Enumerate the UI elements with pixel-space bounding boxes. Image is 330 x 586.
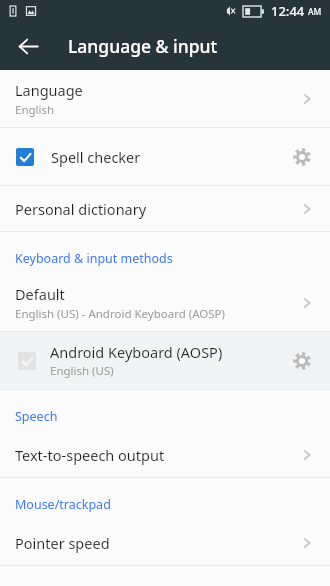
staticText: 12:44 bbox=[271, 2, 305, 20]
button[interactable]: Android Keyboard (AOSP) bbox=[0, 332, 330, 389]
staticText: Speech bbox=[15, 408, 58, 425]
staticText: English bbox=[15, 102, 55, 118]
staticText: Language & input bbox=[68, 34, 218, 58]
staticText: Mouse/trackpad bbox=[15, 496, 111, 513]
staticText: Pointer speed bbox=[15, 533, 110, 553]
staticText: Language bbox=[15, 80, 83, 100]
staticText: AM bbox=[308, 6, 322, 18]
staticText: English (US) bbox=[50, 363, 114, 379]
button[interactable]: Navigate up bbox=[6, 24, 50, 68]
button[interactable]: Default bbox=[0, 274, 330, 331]
staticText: Text-to-speech output bbox=[15, 445, 165, 465]
button[interactable]: Language bbox=[0, 70, 330, 127]
button[interactable]: Settings bbox=[285, 344, 319, 378]
button[interactable]: Settings bbox=[285, 140, 319, 174]
staticText: Keyboard & input methods bbox=[15, 250, 173, 267]
staticText: Personal dictionary bbox=[15, 199, 147, 219]
button[interactable]: Personal dictionary bbox=[0, 186, 330, 231]
button[interactable]: Text-to-speech output bbox=[0, 432, 330, 477]
button[interactable]: Pointer speed bbox=[0, 520, 330, 565]
staticText: Default bbox=[15, 284, 65, 304]
staticText: Android Keyboard (AOSP) bbox=[50, 342, 223, 362]
button[interactable]: Spell checker bbox=[0, 128, 330, 185]
staticText: Spell checker bbox=[51, 147, 285, 167]
staticText: English (US) - Android Keyboard (AOSP) bbox=[15, 306, 226, 322]
